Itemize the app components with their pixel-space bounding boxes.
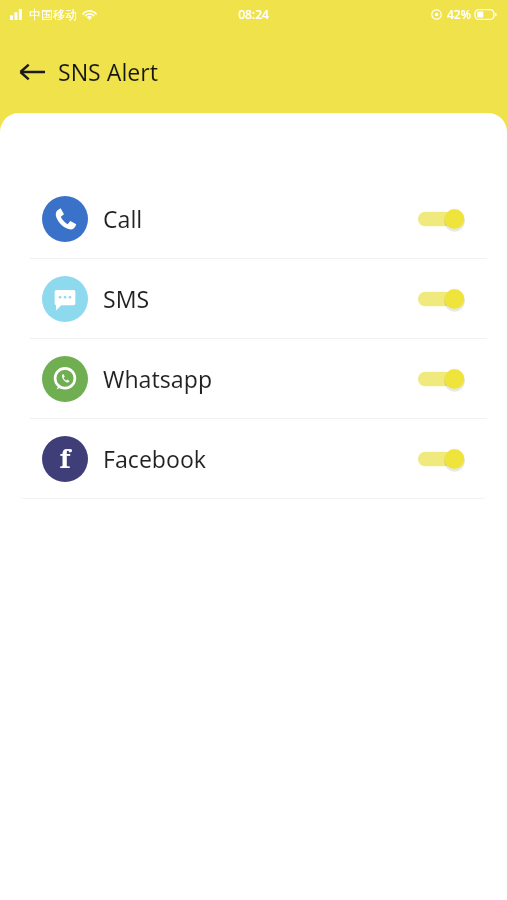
- button[interactable]: Toggle: [418, 442, 466, 476]
- button[interactable]: Back: [6, 46, 58, 98]
- staticText: f: [60, 441, 71, 475]
- staticText: Call: [103, 203, 143, 234]
- button[interactable]: Toggle: [418, 362, 466, 396]
- staticText: 08:24: [238, 6, 269, 22]
- staticText: 42%: [447, 6, 471, 22]
- staticText: 中国移动: [29, 7, 77, 22]
- staticText: Whatsapp: [103, 363, 213, 394]
- button[interactable]: Toggle: [418, 282, 466, 316]
- staticText: SNS Alert: [58, 56, 159, 87]
- button[interactable]: f: [19, 419, 488, 498]
- button[interactable]: SMS: [19, 259, 488, 338]
- button[interactable]: Call: [19, 179, 488, 258]
- staticText: Facebook: [103, 443, 207, 474]
- button[interactable]: Toggle: [418, 202, 466, 236]
- button[interactable]: Whatsapp: [19, 339, 488, 418]
- staticText: SMS: [103, 283, 150, 314]
